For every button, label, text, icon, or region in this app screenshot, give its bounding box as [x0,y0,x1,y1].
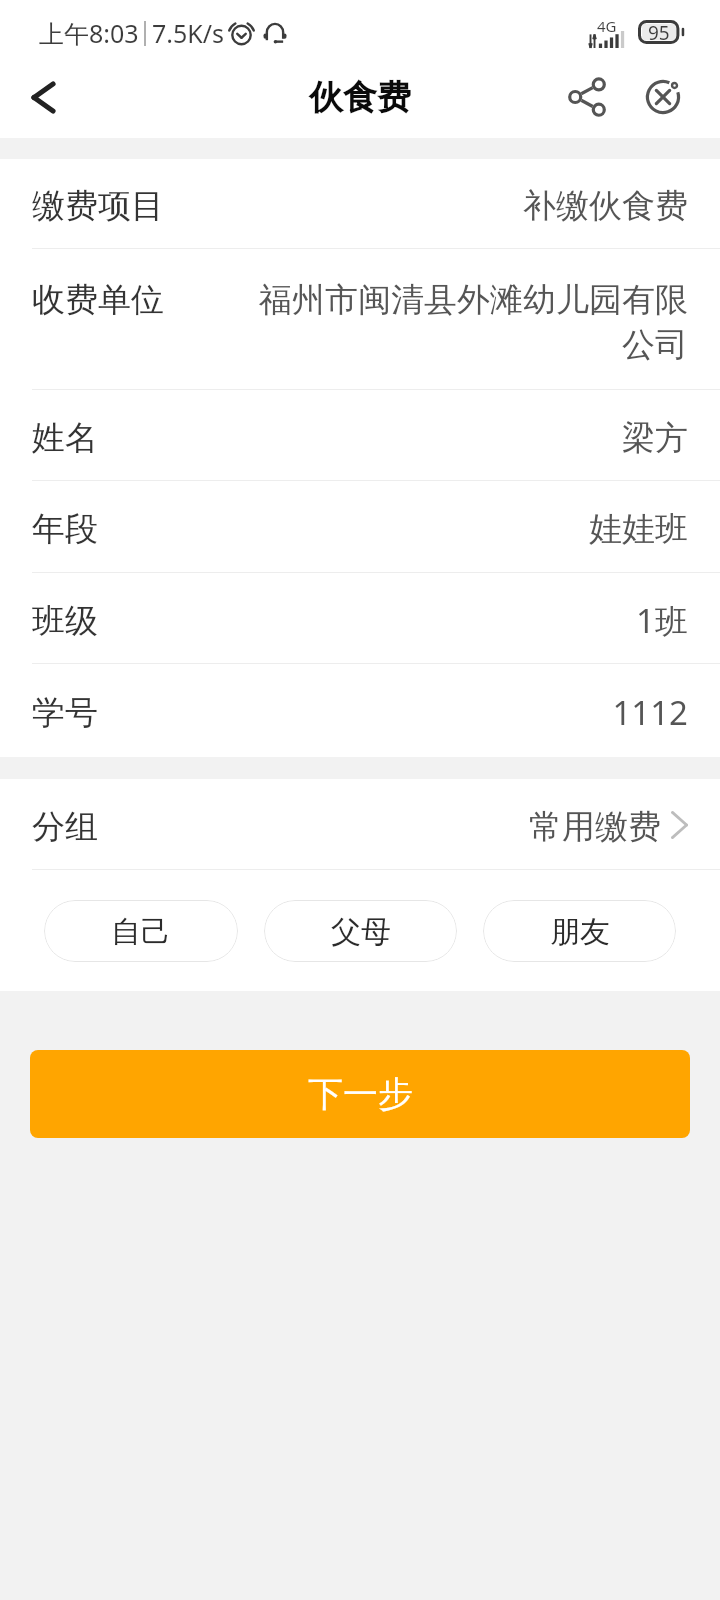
button[interactable]: Close [628,62,698,132]
button[interactable]: 年段 [0,481,720,573]
staticText: 伙食费 [309,76,411,119]
staticText: 学号 [32,692,98,734]
staticText: 班级 [32,600,98,642]
staticText: 梁方 [128,417,688,459]
button[interactable]: 自己 [44,900,238,962]
staticText: 分组 [32,806,98,848]
staticText: 95 [648,20,670,44]
button[interactable]: Share [552,62,622,132]
button[interactable]: 父母 [264,900,457,962]
staticText: 1班 [128,598,688,643]
staticText: 福州市闽清县外滩幼儿园有限公司 [248,279,688,365]
staticText: 常用缴费 [529,806,661,848]
button[interactable]: 班级 [0,573,720,664]
button[interactable]: Back [0,56,82,138]
button[interactable]: 收费单位 [0,249,720,390]
button[interactable]: 学号 [0,664,720,757]
staticText: 7.5K/s [152,16,225,50]
staticText: 姓名 [32,417,98,459]
button[interactable]: 朋友 [483,900,676,962]
staticText: 娃娃班 [128,508,688,550]
button[interactable]: 姓名 [0,390,720,481]
staticText: 上午8:03 [39,16,139,50]
staticText: 收费单位 [32,279,164,321]
staticText: 1112 [128,690,688,735]
staticText: 4G [597,16,617,36]
staticText: 自己 [111,913,171,951]
staticText: 补缴伙食费 [194,185,688,227]
button[interactable]: 缴费项目 [0,159,720,249]
button[interactable]: 分组 [0,779,720,870]
staticText: 朋友 [550,913,610,951]
staticText: 父母 [331,913,391,951]
staticText: 年段 [32,508,98,550]
staticText: 缴费项目 [32,185,164,227]
button[interactable]: 下一步 [30,1050,690,1138]
staticText: 下一步 [308,1072,413,1116]
